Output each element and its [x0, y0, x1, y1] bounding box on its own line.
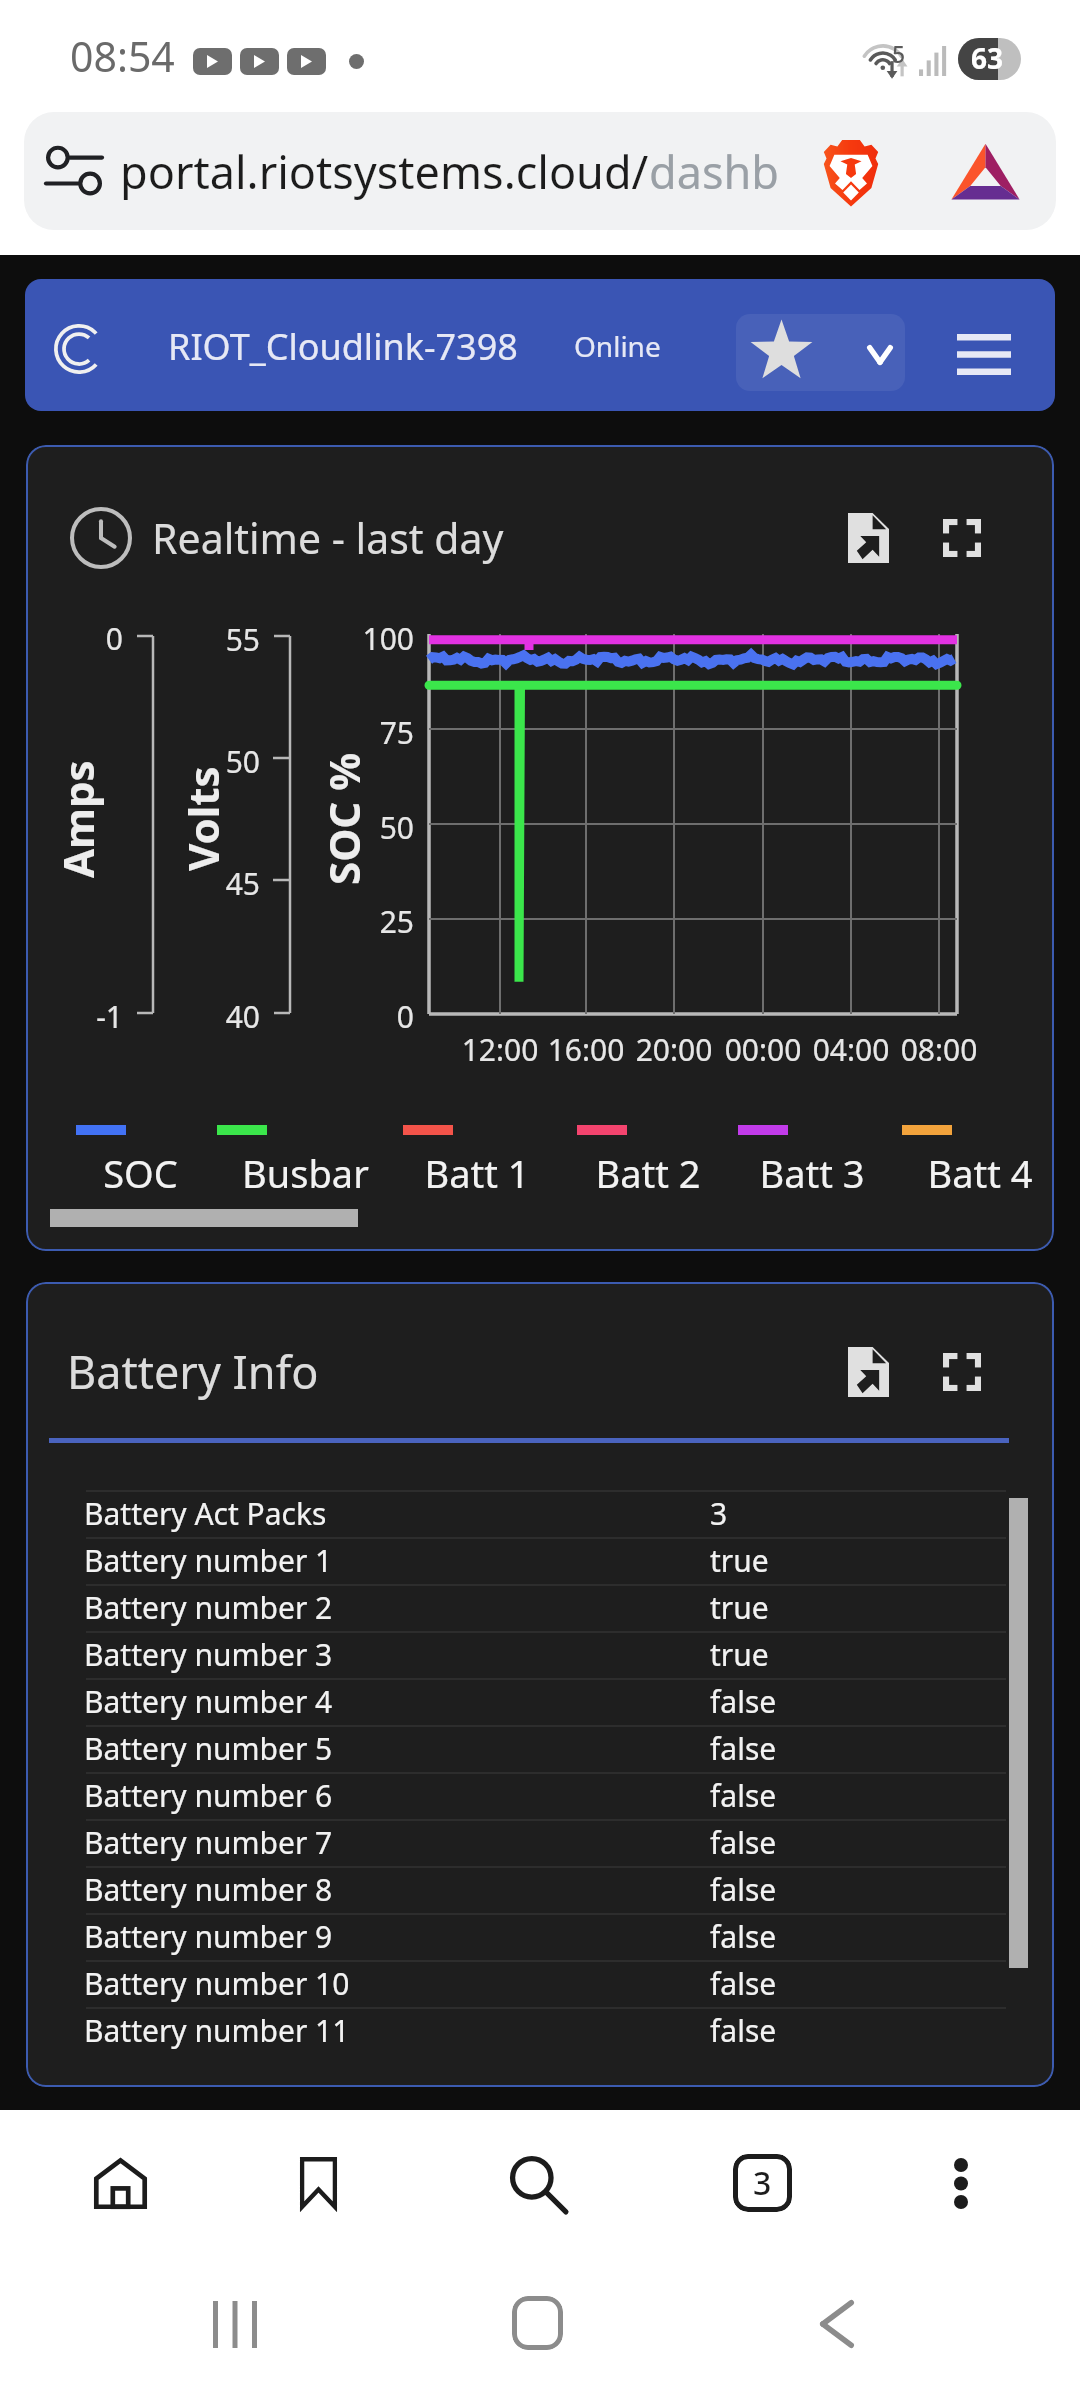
staticText: Battery number 1	[84, 1540, 710, 1581]
button[interactable]: Batt 1	[424, 1147, 530, 1199]
button[interactable]: Fullscreen	[925, 1335, 999, 1409]
staticText: Battery Act Packs	[84, 1493, 710, 1534]
staticText: false	[710, 1916, 777, 1957]
staticText: Battery number 4	[84, 1681, 710, 1722]
button[interactable]: Busbar	[242, 1147, 369, 1199]
staticText: SOC %	[315, 752, 372, 885]
staticText: false	[710, 1775, 777, 1816]
staticText: 00:00	[683, 1029, 843, 1070]
staticText: Battery number 9	[84, 1916, 710, 1957]
staticText: false	[710, 2010, 777, 2051]
staticText: 08:00	[859, 1029, 1019, 1070]
button[interactable]: Battery number 9	[26, 1913, 1054, 1960]
staticText: 25	[294, 901, 414, 942]
button[interactable]: Site settings	[24, 112, 1056, 230]
staticText: 50	[294, 807, 414, 848]
staticText: false	[710, 1963, 777, 2004]
staticText: Battery number 7	[84, 1822, 710, 1863]
button[interactable]: Battery number 6	[26, 1772, 1054, 1819]
button[interactable]: Search	[445, 2118, 631, 2248]
staticText: false	[710, 1822, 777, 1863]
staticText: portal.riotsystems.cloud/	[120, 141, 649, 202]
button[interactable]: Battery number 3	[26, 1631, 1054, 1678]
button[interactable]: Home	[27, 2118, 213, 2248]
button[interactable]: Menu	[937, 309, 1023, 381]
staticText: Battery number 5	[84, 1728, 710, 1769]
staticText: 3	[710, 1493, 728, 1534]
button[interactable]: Battery number 1	[26, 1537, 1054, 1584]
button[interactable]: Bookmarks	[225, 2118, 411, 2248]
other: Brave rewards	[950, 140, 1021, 202]
staticText: Battery number 3	[84, 1634, 710, 1675]
staticText: 55	[140, 619, 260, 660]
button[interactable]: Battery number 5	[26, 1725, 1054, 1772]
staticText: 04:00	[771, 1029, 931, 1070]
staticText: 3	[753, 2161, 772, 2205]
button[interactable]: Export	[831, 1335, 905, 1409]
staticText: Battery number 2	[84, 1587, 710, 1628]
button[interactable]: SOC	[103, 1147, 178, 1199]
staticText: 08:54	[70, 28, 175, 84]
staticText: 12:00	[420, 1029, 580, 1070]
staticText: true	[710, 1634, 769, 1675]
staticText: 5	[892, 38, 906, 69]
button[interactable]: Tabs	[669, 2118, 855, 2248]
button[interactable]: Battery number 8	[26, 1866, 1054, 1913]
staticText: Amps	[49, 760, 106, 878]
staticText: 0	[26, 618, 123, 659]
button[interactable]: Fullscreen	[925, 501, 999, 575]
staticText: 100	[294, 618, 414, 659]
staticText: dashb	[649, 141, 779, 202]
button[interactable]: Home	[447, 2273, 627, 2373]
button[interactable]: Back	[747, 2274, 927, 2374]
button[interactable]: More options	[868, 2118, 1054, 2248]
button[interactable]: Battery number 7	[26, 1819, 1054, 1866]
other: Site settings	[46, 147, 102, 195]
staticText: Battery number 6	[84, 1775, 710, 1816]
staticText: false	[710, 1681, 777, 1722]
button[interactable]: Favourite	[736, 314, 905, 391]
staticText: 63	[971, 39, 1004, 77]
staticText: 45	[140, 863, 260, 904]
button[interactable]: Realtime - last day	[152, 510, 504, 566]
staticText: true	[710, 1587, 769, 1628]
staticText: 0	[294, 996, 414, 1037]
button[interactable]: Batt 3	[759, 1147, 865, 1199]
button[interactable]: Battery number 10	[26, 1960, 1054, 2007]
staticText: 20:00	[594, 1029, 754, 1070]
staticText: Battery number 8	[84, 1869, 710, 1910]
button[interactable]: Export	[831, 501, 905, 575]
other: Brave shields	[817, 132, 885, 212]
button[interactable]: Battery Info	[67, 1341, 319, 1402]
button[interactable]: Battery number 2	[26, 1584, 1054, 1631]
staticText: Volts	[174, 766, 231, 871]
staticText: 16:00	[506, 1029, 666, 1070]
button[interactable]: Batt 2	[595, 1147, 701, 1199]
staticText: true	[710, 1540, 769, 1581]
staticText: Battery number 10	[84, 1963, 710, 2004]
staticText: 40	[140, 996, 260, 1037]
button[interactable]: Battery number 11	[26, 2007, 1054, 2054]
button[interactable]: Battery number 4	[26, 1678, 1054, 1725]
button[interactable]: RIOT_Cloudlink-7398	[168, 322, 518, 371]
staticText: Online	[574, 327, 661, 365]
staticText: false	[710, 1869, 777, 1910]
button[interactable]: Recents	[145, 2274, 325, 2374]
staticText: Battery number 11	[84, 2010, 710, 2051]
staticText: false	[710, 1728, 777, 1769]
button[interactable]: Batt 4	[927, 1147, 1033, 1199]
button[interactable]: Battery Act Packs	[26, 1490, 1054, 1537]
staticText: -1	[26, 996, 123, 1037]
staticText: 50	[140, 741, 260, 782]
staticText: 75	[294, 712, 414, 753]
